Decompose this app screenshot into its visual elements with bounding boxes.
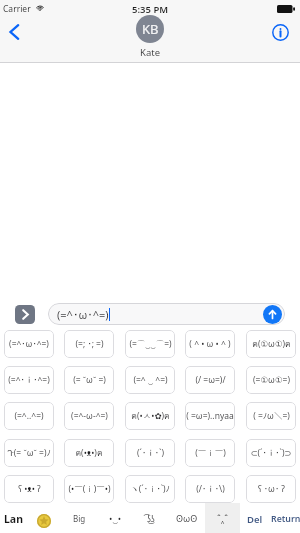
button[interactable]: (= ˘ω˘ =) xyxy=(64,366,114,394)
button[interactable]: (=^･ｉ･^=) xyxy=(4,366,54,394)
button[interactable]: (=^..^=) xyxy=(4,402,54,430)
staticText: ( ^ • ω • ^ ) xyxy=(189,338,231,350)
button[interactable]: ʕ •ᴥ• ʔ xyxy=(4,475,54,503)
staticText: (´･ｉ･`) xyxy=(137,447,164,459)
staticText: 5:35 PM xyxy=(132,3,169,16)
button[interactable]: ( ^ • ω • ^ ) xyxy=(185,330,235,358)
staticText: (=^･ω･^=) xyxy=(57,307,109,322)
button[interactable]: ᒓ(= ˘ω˘ =)ﾉ xyxy=(4,439,54,467)
staticText: (=⌒‿‿⌒=) xyxy=(129,338,172,350)
staticText: (/･ｉ･\) xyxy=(196,483,225,495)
button[interactable]: (=^･ω･^=) xyxy=(48,303,285,325)
button[interactable]: ฅ(•ㅅ•✿)ฅ xyxy=(125,402,175,430)
staticText: (=^-ω-^=) xyxy=(71,410,108,422)
button[interactable]: (=^-ω-^=) xyxy=(64,402,114,430)
button[interactable]: ʕ ･ω･ ʔ xyxy=(246,475,296,503)
button[interactable]: Back xyxy=(2,20,26,44)
button[interactable]: ฅ(①ω①)ฅ xyxy=(246,330,296,358)
button[interactable]: Lan xyxy=(4,512,23,526)
staticText: (￣ｉ￣) xyxy=(195,447,226,459)
button[interactable]: (/･ｉ･\) xyxy=(185,475,235,503)
staticText: (= ˘ω˘ =) xyxy=(73,374,106,386)
staticText: (•￣(ｉ)￣•) xyxy=(68,483,111,495)
staticText: (=^..^=) xyxy=(14,410,44,422)
button[interactable]: ( =ω=)..nyaa xyxy=(185,402,235,430)
button[interactable]: (=^ ‿ ^=) xyxy=(125,366,175,394)
button[interactable]: (=⌒‿‿⌒=) xyxy=(125,330,175,358)
staticText: Kate xyxy=(140,46,160,59)
staticText: ( =ω=)..nyaa xyxy=(186,410,234,422)
button[interactable]: Favorites xyxy=(37,514,51,528)
staticText: ฅ(•ᴥ•)ฅ xyxy=(75,446,103,460)
button[interactable]: Send xyxy=(263,305,282,324)
button[interactable]: Del xyxy=(247,513,263,526)
staticText: (=①ω①=) xyxy=(253,374,290,386)
staticText: ⊂(´･ｉ･`)⊃ xyxy=(250,447,292,459)
button[interactable]: Return xyxy=(271,513,300,525)
staticText: ͡ʖ͜ʖ xyxy=(147,512,155,524)
button[interactable]: (=①ω①=) xyxy=(246,366,296,394)
button[interactable]: (￣ｉ￣) xyxy=(185,439,235,467)
button[interactable]: (/ =ω=)/ xyxy=(185,366,235,394)
button[interactable]: (´･ｉ･`) xyxy=(125,439,175,467)
button[interactable]: (•￣(ｉ)￣•) xyxy=(64,475,114,503)
staticText: ( =ﾉω＼=) xyxy=(253,410,290,422)
button[interactable]: Big xyxy=(64,503,94,533)
staticText: (=; ･; =) xyxy=(75,338,104,350)
staticText: (/ =ω=)/ xyxy=(195,374,226,386)
button[interactable]: More apps xyxy=(15,305,35,324)
button[interactable]: ヽ(´･ｉ･`)ﾉ xyxy=(125,475,175,503)
staticText: (=^･ω･^=) xyxy=(9,338,49,350)
staticText: Big xyxy=(73,513,86,524)
button[interactable]: KB xyxy=(136,15,164,59)
staticText: •‿• xyxy=(109,512,122,524)
staticText: ฅ(①ω①)ฅ xyxy=(252,337,291,351)
staticText: (=^･ｉ･^=) xyxy=(8,374,50,386)
staticText: ʕ ･ω･ ʔ xyxy=(258,483,285,495)
staticText: ʕ •ᴥ• ʔ xyxy=(18,483,41,495)
button[interactable]: Info xyxy=(268,20,292,44)
button[interactable]: ( =ﾉω＼=) xyxy=(246,402,296,430)
staticText: Carrier xyxy=(3,3,31,15)
button[interactable]: ˆ‸ˆ xyxy=(205,503,240,533)
staticText: (=^ ‿ ^=) xyxy=(133,374,168,386)
button[interactable]: ͡ʖ͜ʖ xyxy=(136,503,166,533)
button[interactable]: ⊂(´･ｉ･`)⊃ xyxy=(246,439,296,467)
staticText: KB xyxy=(142,20,159,38)
button[interactable]: •‿• xyxy=(100,503,130,533)
staticText: ʘωʘ xyxy=(176,512,198,524)
staticText: ᒓ(= ˘ω˘ =)ﾉ xyxy=(7,447,51,459)
staticText: ˆ‸ˆ xyxy=(217,512,229,524)
staticText: ฅ(•ㅅ•✿)ฅ xyxy=(131,409,170,423)
button[interactable]: (=; ･; =) xyxy=(64,330,114,358)
button[interactable]: ʘωʘ xyxy=(172,503,202,533)
button[interactable]: ฅ(•ᴥ•)ฅ xyxy=(64,439,114,467)
staticText: ヽ(´･ｉ･`)ﾉ xyxy=(130,483,170,495)
button[interactable]: (=^･ω･^=) xyxy=(4,330,54,358)
